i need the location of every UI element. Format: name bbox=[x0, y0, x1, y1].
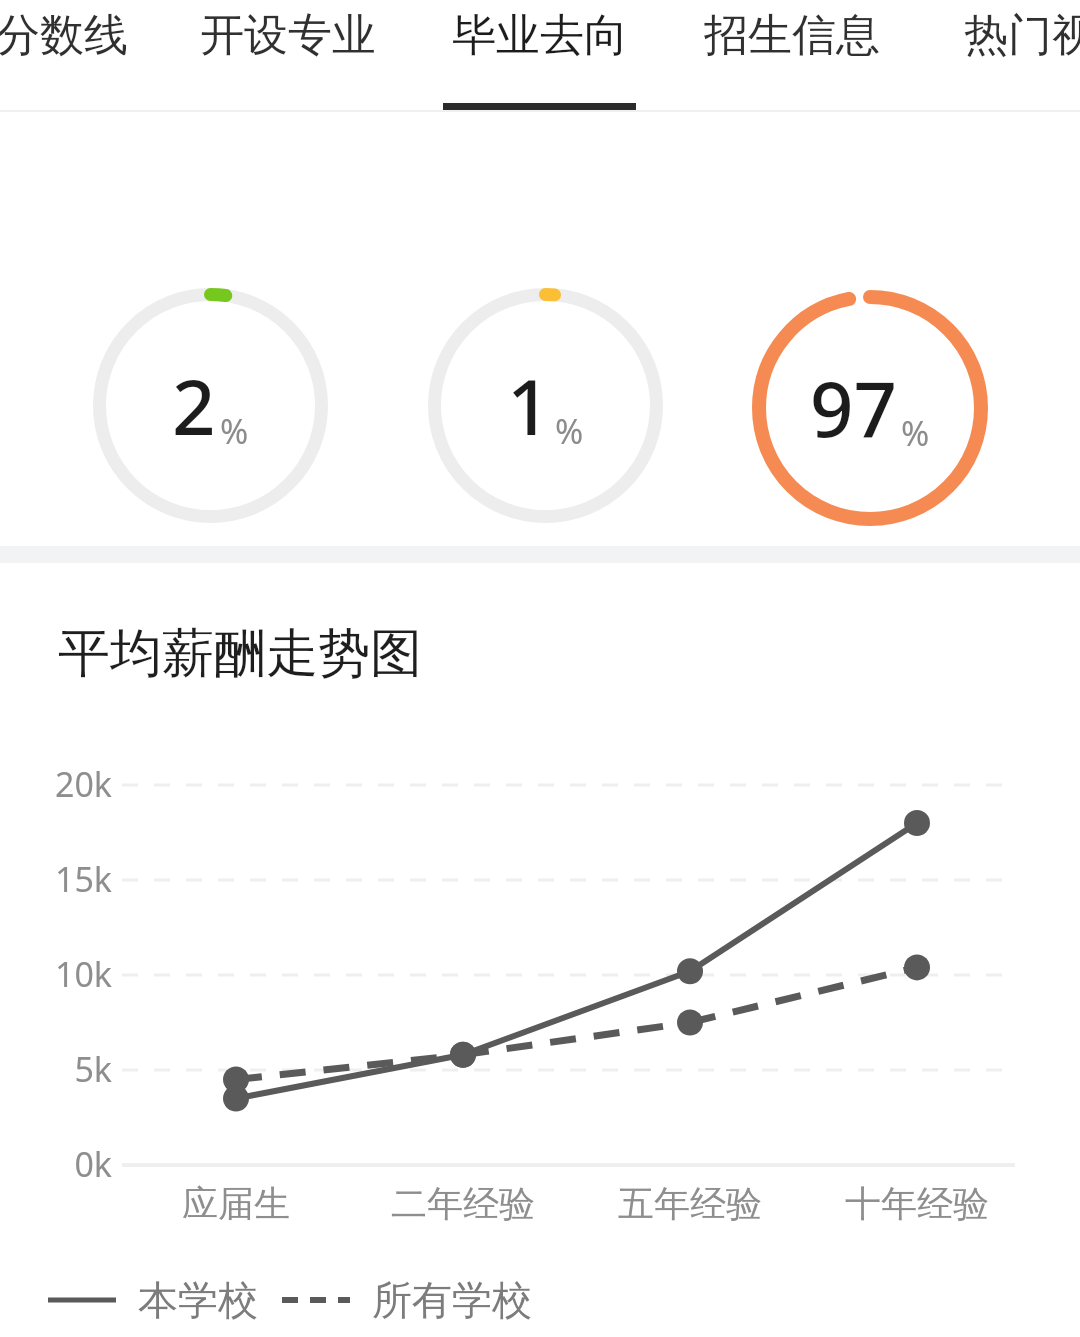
staticText: 十年经验 bbox=[845, 1181, 989, 1226]
button[interactable]: 本学校 bbox=[48, 1275, 258, 1325]
button[interactable]: 毕业去向 bbox=[425, 0, 655, 104]
staticText: 就业率 bbox=[816, 547, 924, 592]
button[interactable]: 97 bbox=[749, 287, 991, 529]
staticText: 15k bbox=[54, 856, 112, 902]
staticText: 97 bbox=[810, 356, 897, 460]
button[interactable]: 开设专业 bbox=[173, 0, 403, 104]
staticText: 平均薪酬走势图 bbox=[58, 621, 422, 687]
staticText: 1 bbox=[507, 354, 551, 458]
staticText: 出国率 bbox=[156, 544, 264, 589]
staticText: 5k bbox=[74, 1046, 112, 1092]
staticText: 本学校 bbox=[138, 1275, 258, 1325]
button[interactable]: 招生信息 bbox=[677, 0, 907, 104]
staticText: 开设专业 bbox=[200, 8, 376, 63]
staticText: 0k bbox=[74, 1141, 112, 1187]
staticText: 毕业去向 bbox=[452, 8, 628, 63]
staticText: 升学率 bbox=[491, 544, 599, 589]
button[interactable]: 分数线 bbox=[0, 0, 177, 104]
staticText: 20k bbox=[54, 761, 112, 807]
staticText: % bbox=[901, 410, 930, 456]
staticText: % bbox=[555, 408, 584, 454]
staticText: 应届生 bbox=[182, 1181, 290, 1226]
staticText: 所有学校 bbox=[372, 1275, 532, 1325]
button[interactable]: 所有学校 bbox=[282, 1275, 532, 1325]
staticText: 10k bbox=[54, 951, 112, 997]
button[interactable]: 2 bbox=[90, 285, 331, 526]
staticText: 五年经验 bbox=[618, 1181, 762, 1226]
staticText: 招生信息 bbox=[704, 8, 880, 63]
button[interactable]: 1 bbox=[425, 285, 666, 526]
staticText: 二年经验 bbox=[391, 1181, 535, 1226]
staticText: 热门视 bbox=[964, 8, 1080, 63]
staticText: 2 bbox=[172, 354, 216, 458]
staticText: 分数线 bbox=[0, 8, 128, 63]
staticText: % bbox=[220, 408, 249, 454]
button[interactable]: 热门视 bbox=[915, 0, 1080, 104]
